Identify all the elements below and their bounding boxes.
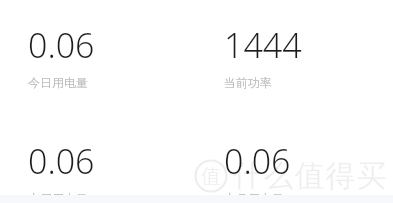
staticText: 值	[201, 164, 221, 189]
button[interactable]: 1444	[196, 22, 393, 90]
button[interactable]: 0.06	[0, 22, 196, 90]
button[interactable]: 0.06	[196, 138, 393, 203]
staticText: 今日用电量	[28, 75, 88, 90]
staticText: 本周用电量	[28, 191, 88, 203]
staticText: 1444	[224, 22, 302, 68]
button[interactable]: 0.06	[0, 138, 196, 203]
staticText: 什么值得买	[232, 157, 387, 195]
staticText: 当前功率	[224, 75, 272, 90]
staticText: 本月用电量	[224, 191, 284, 203]
other: 什么值得买 watermark	[194, 157, 387, 195]
staticText: 0.06	[28, 22, 95, 68]
staticText: 0.06	[224, 138, 291, 184]
staticText: 0.06	[28, 138, 95, 184]
